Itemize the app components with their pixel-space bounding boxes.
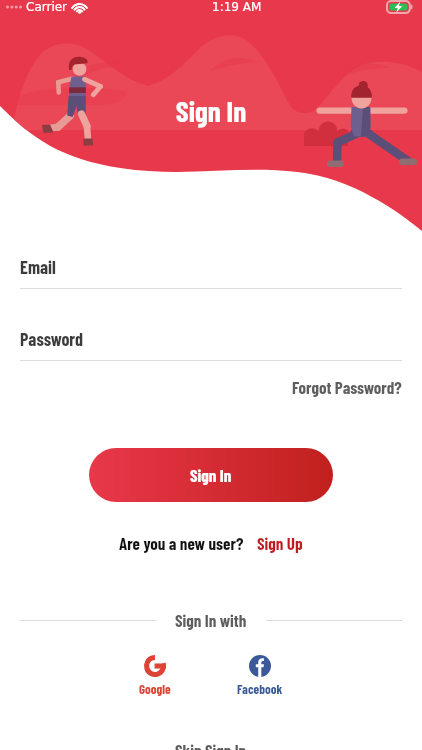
staticText: Are you a new user?	[119, 533, 244, 553]
staticText: Facebook	[237, 681, 283, 697]
other: Battery charging	[387, 1, 413, 13]
staticText: Carrier	[26, 0, 68, 14]
staticText: Sign In	[190, 465, 232, 485]
staticText: Skip Sign In	[175, 740, 247, 750]
button[interactable]: Password	[20, 328, 84, 350]
staticText: Email	[20, 256, 56, 278]
staticText: Google	[139, 681, 171, 697]
other: Wi-Fi signal	[72, 2, 87, 13]
staticText: Sign In with	[175, 610, 247, 630]
staticText: Sign Up	[257, 533, 303, 553]
staticText: 1:19 AM	[212, 0, 262, 14]
button[interactable]: Email	[20, 256, 56, 278]
button[interactable]: Forgot Password?	[292, 377, 402, 397]
button[interactable]: Skip Sign In	[0, 740, 422, 750]
button[interactable]: Google	[127, 655, 183, 697]
button[interactable]: Sign In	[89, 448, 333, 502]
staticText: Password	[20, 328, 84, 350]
button[interactable]: Facebook	[225, 655, 295, 697]
button[interactable]: Sign Up	[257, 533, 303, 553]
staticText: Sign In	[0, 93, 422, 128]
staticText: Forgot Password?	[292, 377, 402, 397]
